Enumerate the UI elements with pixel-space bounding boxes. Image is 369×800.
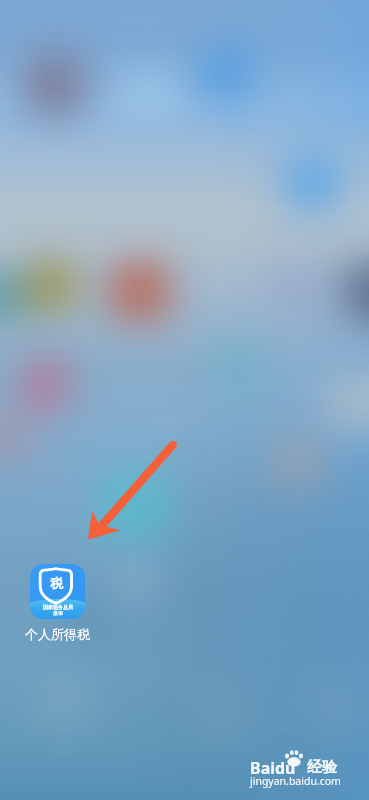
staticText: 国家税务总局 (43, 604, 73, 610)
button[interactable]: 税 (16, 564, 99, 642)
staticText: 发布 (53, 610, 63, 616)
staticText: jingyan.baidu.com (250, 774, 341, 788)
staticText: 经验 (307, 758, 337, 777)
staticText: 税 (50, 575, 63, 591)
staticText: 个人所得税 (25, 626, 90, 642)
staticText: Baidu (250, 757, 296, 777)
